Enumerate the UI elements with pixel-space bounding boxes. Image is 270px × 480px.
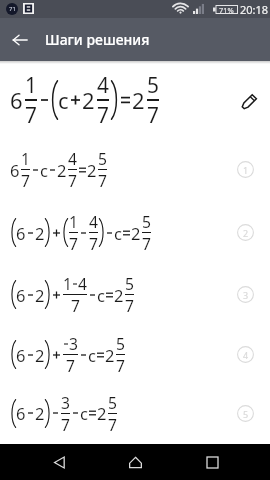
staticText: 7 — [21, 170, 30, 191]
staticText: 6 — [16, 284, 26, 306]
staticText: 7 — [68, 170, 77, 191]
staticText: 7 — [116, 355, 125, 376]
staticText: 7 — [69, 233, 78, 254]
staticText: 5 — [147, 71, 159, 99]
staticText: 7 — [25, 101, 37, 129]
staticText: 5 — [116, 333, 125, 354]
staticText: 7 — [125, 295, 134, 316]
button[interactable]: Home — [117, 444, 153, 480]
button[interactable]: 6 — [0, 384, 270, 442]
staticText: 2 — [97, 402, 107, 424]
staticText: 4 — [89, 211, 98, 232]
staticText: 6 — [10, 159, 20, 181]
staticText: c — [88, 344, 96, 366]
staticText: 1 — [63, 273, 72, 294]
staticText: 2 — [131, 222, 141, 244]
staticText: 2 — [35, 402, 45, 424]
button[interactable]: 6 — [0, 325, 270, 384]
staticText: 5 — [98, 148, 107, 169]
staticText: 2 — [114, 284, 124, 306]
staticText: 7 — [142, 233, 151, 254]
staticText: 5 — [243, 408, 249, 420]
staticText: 4 — [97, 71, 109, 99]
staticText: c — [97, 284, 105, 306]
staticText: 6 — [10, 85, 23, 115]
staticText: c — [58, 85, 69, 115]
button[interactable]: Edit — [236, 89, 262, 115]
staticText: 2 — [35, 284, 45, 306]
staticText: 1 — [69, 211, 78, 232]
staticText: 4 — [243, 349, 249, 361]
staticText: 3 — [61, 392, 70, 413]
staticText: 5 — [108, 392, 117, 413]
staticText: 6 — [16, 402, 26, 424]
staticText: 7 — [71, 295, 80, 316]
staticText: c — [40, 159, 48, 181]
button[interactable]: Back — [0, 20, 40, 60]
staticText: 2 — [132, 85, 145, 115]
staticText: 7 — [89, 233, 98, 254]
staticText: c — [80, 402, 88, 424]
staticText: 3 — [69, 333, 78, 354]
staticText: 6 — [16, 344, 26, 366]
button[interactable]: 6 — [0, 138, 270, 201]
staticText: 20:18 — [240, 2, 269, 17]
button[interactable]: Recents — [194, 444, 230, 480]
staticText: 2 — [243, 227, 249, 239]
staticText: 5 — [142, 211, 151, 232]
staticText: 4 — [68, 148, 77, 169]
button[interactable]: Back — [41, 444, 77, 480]
staticText: 71% — [219, 5, 234, 14]
staticText: Шаги решения — [45, 30, 150, 49]
staticText: 4 — [78, 273, 87, 294]
button[interactable]: 6 — [0, 201, 270, 264]
staticText: 1 — [21, 148, 30, 169]
staticText: 5 — [125, 273, 134, 294]
staticText: 7 — [108, 414, 117, 435]
staticText: 7 — [147, 101, 159, 129]
staticText: 7 — [98, 170, 107, 191]
staticText: c — [114, 222, 122, 244]
staticText: 2 — [57, 159, 67, 181]
staticText: 1 — [25, 71, 37, 99]
staticText: 2 — [105, 344, 115, 366]
staticText: 7 — [66, 355, 75, 376]
button[interactable]: 6 — [0, 62, 270, 138]
staticText: 6 — [16, 222, 26, 244]
staticText: 7 — [97, 101, 109, 129]
staticText: 3 — [243, 289, 249, 301]
staticText: 2 — [35, 344, 45, 366]
staticText: 7 — [61, 414, 70, 435]
staticText: 2 — [82, 85, 95, 115]
staticText: 1 — [243, 164, 249, 176]
staticText: 71 — [9, 5, 16, 13]
staticText: 2 — [35, 222, 45, 244]
button[interactable]: 6 — [0, 264, 270, 325]
staticText: 2 — [87, 159, 97, 181]
